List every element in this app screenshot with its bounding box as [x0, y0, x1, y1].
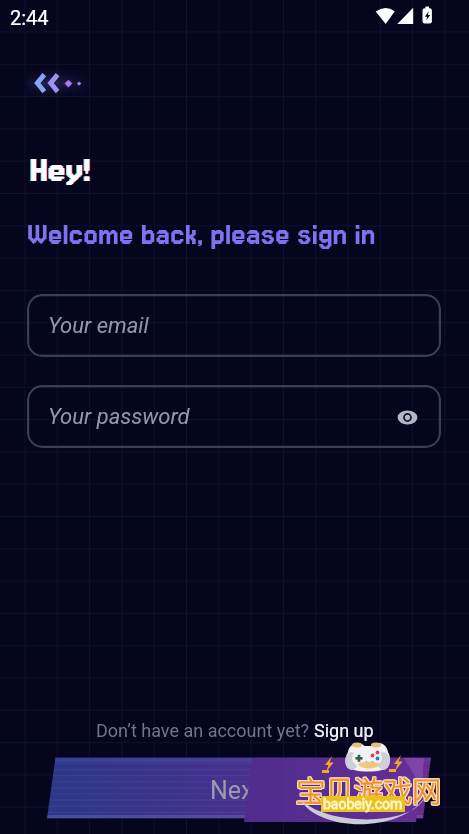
staticText: Sign up: [314, 720, 374, 741]
staticText: 宝贝游戏网: [296, 768, 442, 810]
staticText: Hey!: [29, 150, 90, 190]
staticText: 宝贝游戏网: [296, 769, 442, 811]
staticText: Hey!: [31, 150, 92, 190]
staticText: 宝贝游戏网: [295, 767, 441, 809]
staticText: 宝贝游戏网: [297, 769, 443, 811]
staticText: Your email: [48, 313, 149, 339]
staticText: Next: [210, 776, 262, 805]
staticText: 宝贝游戏网: [297, 767, 443, 809]
button[interactable]: Back: [22, 62, 92, 102]
staticText: 宝贝游戏网: [295, 768, 441, 810]
staticText: 宝贝游戏网: [297, 768, 443, 810]
staticText: Welcome back, please sign in: [27, 218, 376, 251]
button[interactable]: Next: [0, 0, 469, 834]
staticText: 宝贝游戏网: [295, 769, 441, 811]
button[interactable]: Sign up: [314, 720, 374, 741]
button[interactable]: Your password: [27, 385, 441, 448]
staticText: Hey!: [30, 150, 91, 190]
staticText: Don’t have an account yet?: [96, 720, 314, 741]
button[interactable]: Show password: [392, 402, 422, 432]
staticText: 宝贝游戏网: [296, 767, 442, 809]
button[interactable]: Your email: [27, 294, 441, 357]
staticText: 2:44: [10, 6, 49, 29]
staticText: Your password: [48, 404, 190, 430]
staticText: baobeiy.com: [323, 796, 403, 812]
